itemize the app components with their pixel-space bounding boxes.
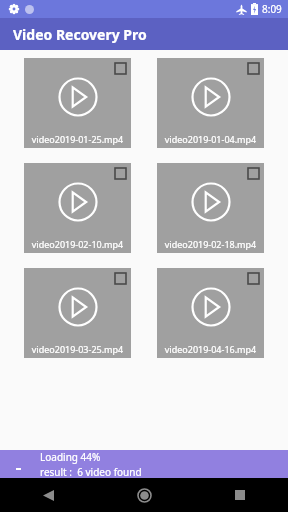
button[interactable]: Select video (24, 163, 131, 253)
staticText: Video Recovery Pro (13, 25, 147, 44)
button[interactable]: Select video (248, 273, 259, 284)
staticText: video2019-01-04.mp4 (157, 133, 264, 145)
staticText: result : 6 video found (40, 465, 142, 478)
staticText: video2019-01-25.mp4 (24, 133, 131, 145)
button[interactable]: Back (0, 478, 96, 512)
staticText: video2019-02-10.mp4 (24, 238, 131, 250)
button[interactable]: Recents (192, 478, 288, 512)
button[interactable]: Home (96, 478, 192, 512)
button[interactable]: Select video (24, 268, 131, 358)
button[interactable]: Select video (248, 168, 259, 179)
button[interactable]: Select video (157, 163, 264, 253)
button[interactable]: Select video (24, 58, 131, 148)
staticText: video2019-03-25.mp4 (24, 343, 131, 355)
button[interactable]: Select video (115, 63, 126, 74)
button[interactable]: Select video (115, 168, 126, 179)
staticText: video2019-04-16.mp4 (157, 343, 264, 355)
staticText: 8:09 (262, 2, 282, 16)
button[interactable]: Select video (115, 273, 126, 284)
button[interactable]: Select video (248, 63, 259, 74)
button[interactable]: Select video (157, 58, 264, 148)
button[interactable]: Loading 44% (0, 450, 288, 478)
staticText: video2019-02-18.mp4 (157, 238, 264, 250)
staticText: Loading 44% (40, 450, 101, 464)
button[interactable]: Select video (157, 268, 264, 358)
